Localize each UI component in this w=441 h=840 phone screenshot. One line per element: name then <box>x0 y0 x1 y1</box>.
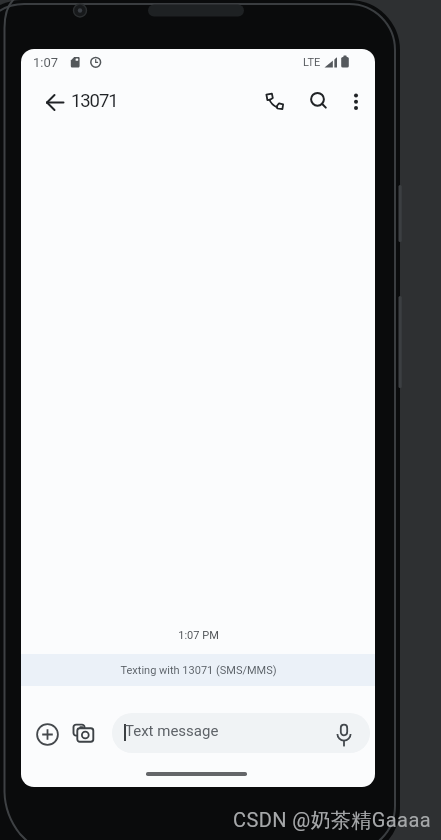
button[interactable] <box>35 86 75 118</box>
button[interactable]: Text message <box>112 713 370 753</box>
staticText: Text message <box>125 722 219 740</box>
staticText: 13071 <box>71 90 118 112</box>
button[interactable] <box>330 720 358 750</box>
staticText: 1:07 PM <box>178 629 219 642</box>
staticText: Texting with 13071 (SMS/MMS) <box>120 664 277 677</box>
button[interactable] <box>342 84 370 118</box>
staticText: CSDN @奶茶精Gaaaa <box>233 808 431 833</box>
button[interactable] <box>32 719 63 750</box>
button[interactable] <box>70 721 98 747</box>
staticText: 1:07 <box>33 55 59 70</box>
button[interactable] <box>258 84 292 118</box>
button[interactable] <box>301 84 335 118</box>
staticText: LTE <box>303 56 321 69</box>
